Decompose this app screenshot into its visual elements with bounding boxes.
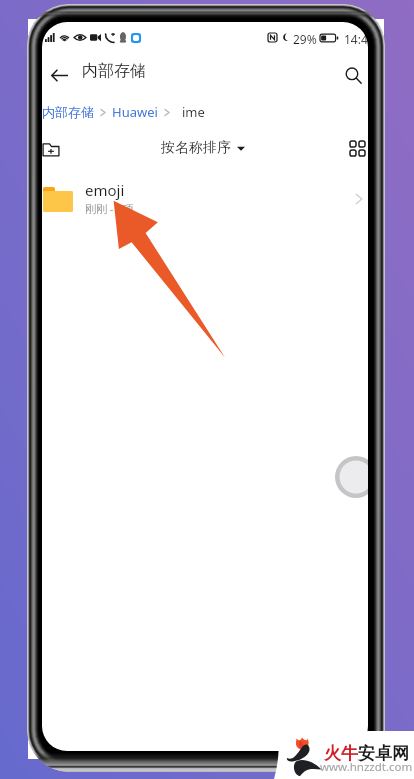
- button[interactable]: Search: [335, 57, 371, 93]
- button[interactable]: emoji: [42, 175, 368, 225]
- staticText: 安卓网: [358, 743, 409, 764]
- staticText: 内部存储: [82, 61, 146, 81]
- button[interactable]: Back: [41, 57, 77, 93]
- staticText: ime: [182, 103, 205, 121]
- staticText: www.hnzzdt.com: [320, 759, 413, 775]
- button[interactable]: Grid view: [343, 134, 371, 162]
- button[interactable]: 内部存储: [42, 104, 94, 120]
- staticText: 按名称排序: [161, 139, 231, 157]
- staticText: 刚刚 - 4项: [85, 201, 134, 216]
- staticText: emoji: [85, 180, 125, 200]
- staticText: 14:4: [344, 31, 368, 44]
- button[interactable]: Huawei: [112, 103, 158, 121]
- button[interactable]: Assistive touch: [334, 455, 378, 499]
- button[interactable]: 按名称排序: [161, 136, 245, 160]
- staticText: 29%: [293, 31, 317, 44]
- staticText: 火牛: [324, 743, 358, 764]
- button[interactable]: New folder: [37, 135, 65, 163]
